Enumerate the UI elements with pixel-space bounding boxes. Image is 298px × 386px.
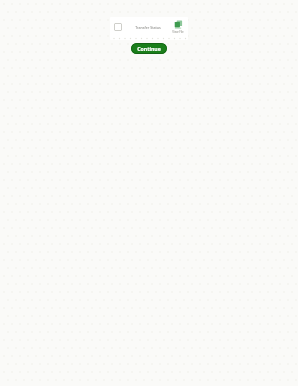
staticText: View File [172,30,184,34]
button[interactable]: Continue [131,43,167,54]
staticText: Transfer Status [135,25,161,30]
button[interactable]: View File [172,20,184,34]
staticText: Continue [137,45,161,52]
button[interactable]: Select [114,23,122,31]
button[interactable]: Transfer Status [128,25,168,30]
